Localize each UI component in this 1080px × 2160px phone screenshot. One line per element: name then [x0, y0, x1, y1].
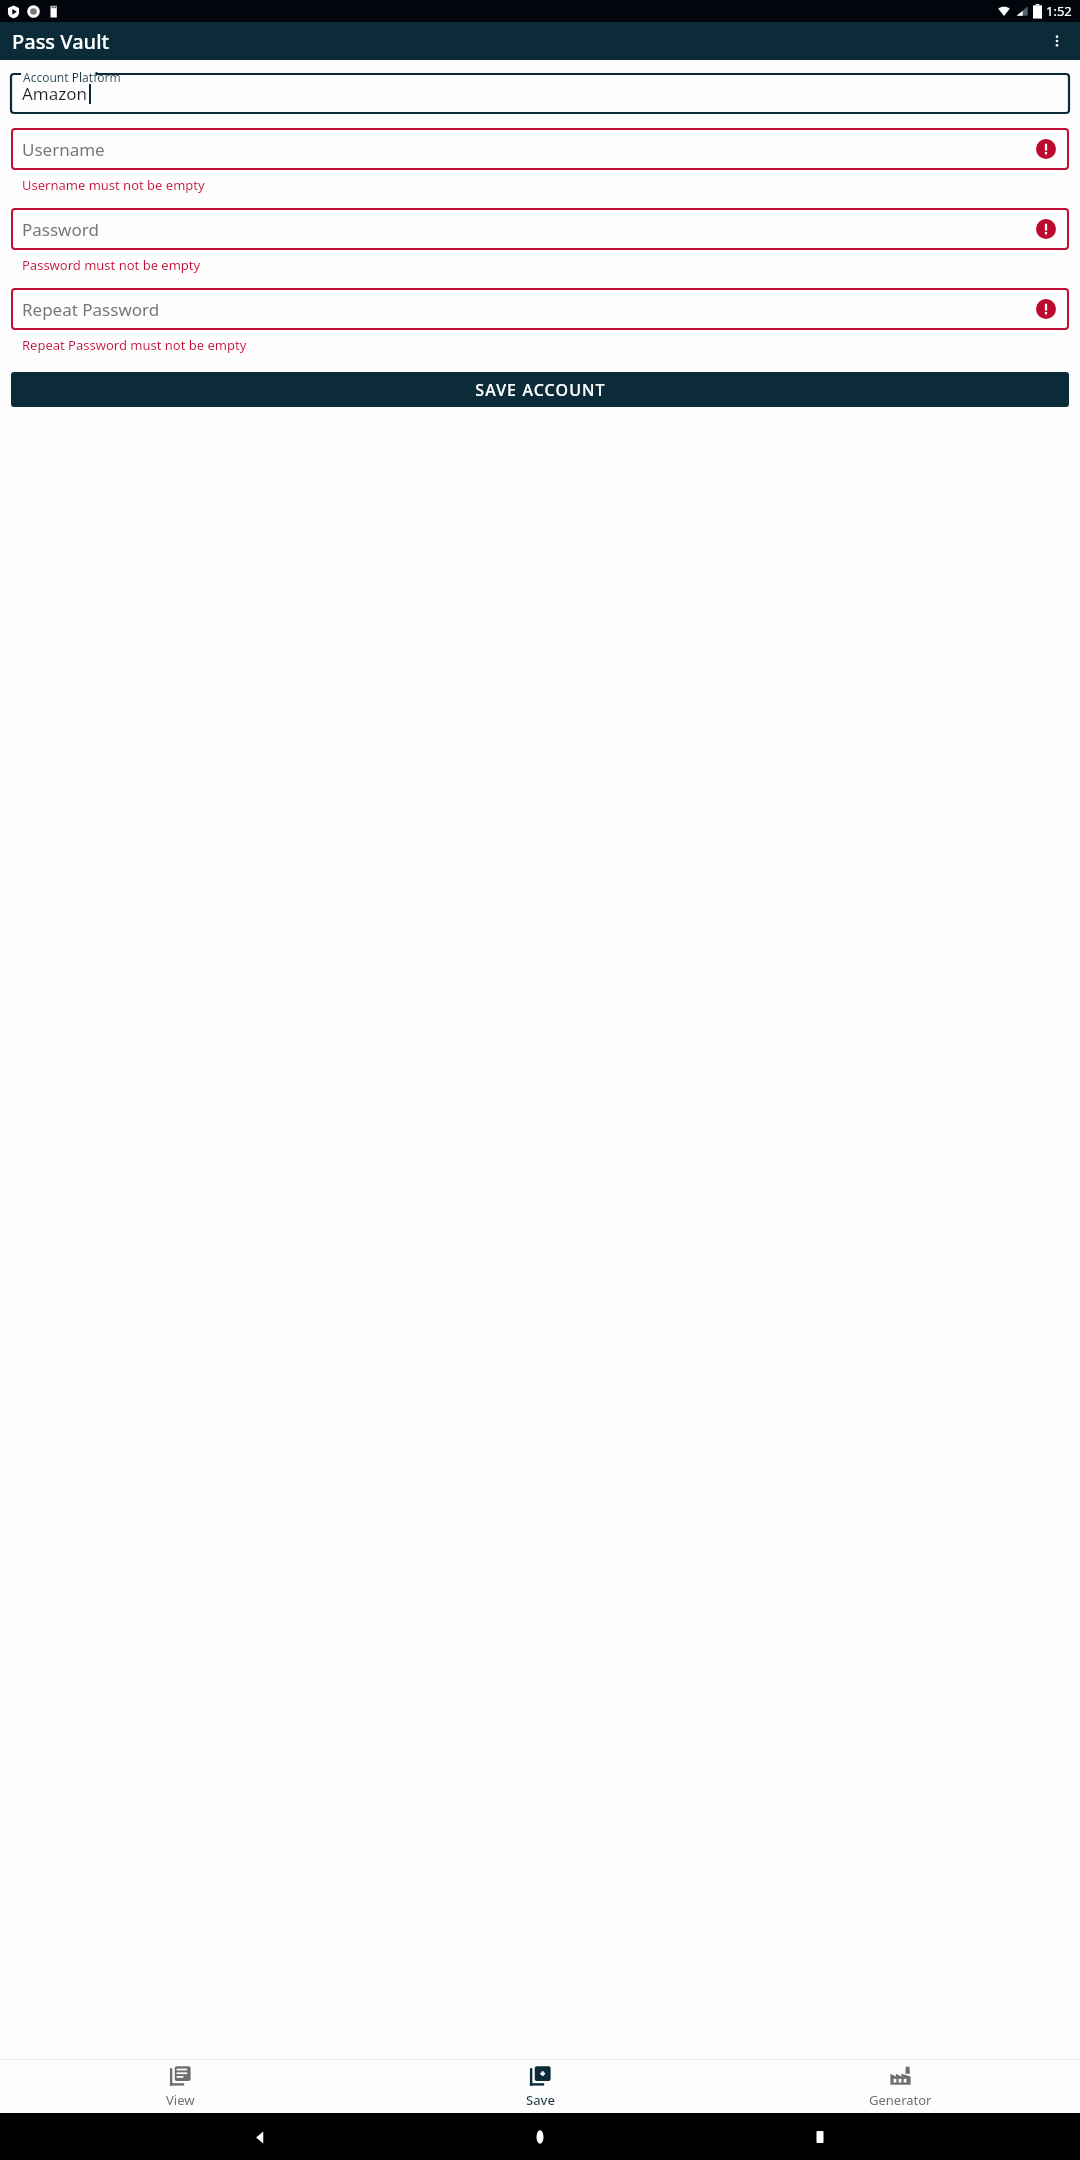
button[interactable]: Home	[520, 2117, 560, 2157]
staticText: Username must not be empty	[22, 176, 1080, 194]
staticText: SAVE ACCOUNT	[475, 379, 606, 401]
button[interactable]: More options	[1042, 26, 1072, 56]
staticText: Generator	[869, 2091, 932, 2109]
other: Error	[1036, 299, 1056, 319]
button[interactable]: SAVE ACCOUNT	[11, 372, 1069, 407]
staticText: 1:52	[1046, 2, 1072, 20]
button[interactable]: Recent apps	[800, 2117, 840, 2157]
staticText: Save	[526, 2091, 555, 2109]
button[interactable]: Save	[360, 2061, 720, 2113]
staticText: Username	[22, 138, 105, 161]
other: Error	[1036, 219, 1056, 239]
button[interactable]: Back	[240, 2117, 280, 2157]
button[interactable]: Password	[11, 208, 1069, 250]
button[interactable]: Username	[11, 128, 1069, 170]
staticText: Pass Vault	[12, 28, 110, 55]
button[interactable]: View	[0, 2061, 360, 2113]
staticText: Repeat Password must not be empty	[22, 336, 1080, 354]
staticText: Password must not be empty	[22, 256, 1080, 274]
button[interactable]: Generator	[720, 2061, 1080, 2113]
button[interactable]: Repeat Password	[11, 288, 1069, 330]
staticText: Repeat Password	[22, 298, 160, 321]
other: Error	[1036, 139, 1056, 159]
staticText: View	[166, 2091, 195, 2109]
staticText: Password	[22, 218, 99, 241]
staticText: Account Platform	[23, 69, 121, 85]
staticText: Amazon	[22, 82, 88, 105]
